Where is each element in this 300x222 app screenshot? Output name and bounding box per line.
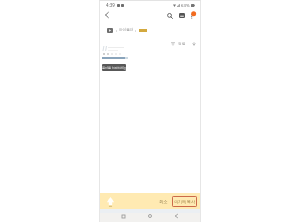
button[interactable]: Folder bbox=[107, 28, 113, 33]
staticText: 정렬 bbox=[178, 41, 186, 46]
button[interactable]: New folder bbox=[104, 195, 117, 208]
staticText: › bbox=[116, 28, 118, 33]
button[interactable]: Home bbox=[144, 210, 156, 222]
staticText: 취소 bbox=[159, 199, 168, 204]
staticText: 4:39 bbox=[106, 2, 115, 8]
staticText: 63% bbox=[181, 2, 190, 8]
button[interactable]: Back bbox=[170, 210, 182, 222]
staticText: › bbox=[135, 28, 137, 33]
button[interactable]: Calendar bbox=[176, 10, 187, 21]
staticText: 여기에 복사 bbox=[174, 199, 196, 204]
button[interactable]: Search bbox=[164, 10, 175, 21]
button[interactable]: Download bbox=[190, 40, 197, 47]
button[interactable]: 취소 bbox=[157, 197, 170, 206]
staticText: 마이폴더 bbox=[119, 28, 134, 33]
button[interactable]: Now playing bbox=[102, 45, 131, 60]
button[interactable]: Recent apps bbox=[117, 210, 129, 222]
button[interactable]: More options bbox=[187, 10, 198, 21]
button[interactable]: Back bbox=[101, 9, 113, 21]
button[interactable]: Notification bbox=[102, 64, 126, 71]
button[interactable]: Filter bbox=[169, 40, 176, 47]
button[interactable]: 마이폴더 bbox=[119, 28, 134, 33]
staticText: 폴더를 선택하세요 bbox=[102, 66, 126, 70]
button[interactable]: 여기에 복사 bbox=[172, 196, 197, 207]
button[interactable]: 정렬 bbox=[177, 41, 187, 46]
